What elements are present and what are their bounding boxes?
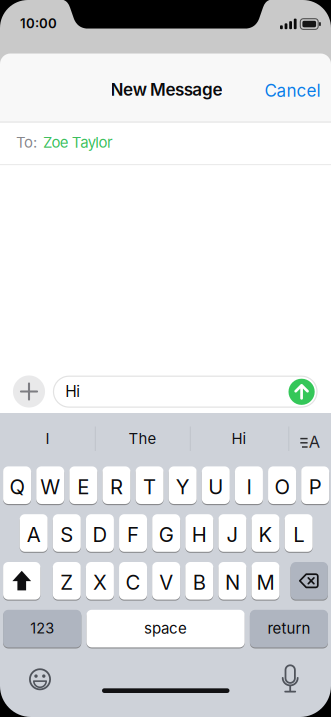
staticText: H <box>192 522 207 547</box>
staticText: A <box>27 522 41 547</box>
staticText: To: <box>16 133 37 151</box>
staticText: T <box>143 474 156 499</box>
staticText: S <box>60 522 73 547</box>
staticText: Zoe Taylor <box>43 133 113 151</box>
staticText: G <box>159 522 174 547</box>
staticText: A <box>309 432 320 452</box>
staticText: C <box>125 570 140 595</box>
staticText: Y <box>176 474 190 499</box>
staticText: K <box>258 522 272 547</box>
staticText: Cancel <box>264 80 320 101</box>
staticText: space <box>144 619 187 637</box>
staticText: Z <box>60 570 73 595</box>
staticText: Hi <box>65 382 80 401</box>
staticText: J <box>226 522 238 547</box>
staticText: L <box>293 522 304 547</box>
staticText: O <box>275 474 290 499</box>
staticText: F <box>127 522 139 547</box>
staticText: B <box>193 570 206 595</box>
staticText: E <box>77 474 89 499</box>
staticText: I <box>246 474 251 499</box>
staticText: New Message <box>110 79 222 100</box>
staticText: U <box>208 474 223 499</box>
staticText: D <box>92 522 107 547</box>
staticText: X <box>93 570 107 595</box>
staticText: N <box>225 570 240 595</box>
staticText: Hi <box>231 429 246 448</box>
staticText: P <box>309 474 322 499</box>
staticText: W <box>40 474 60 499</box>
staticText: Q <box>10 474 25 499</box>
staticText: I <box>45 429 49 448</box>
staticText: 123 <box>30 619 54 637</box>
staticText: V <box>159 570 173 595</box>
staticText: The <box>128 429 156 448</box>
staticText: return <box>267 619 310 637</box>
staticText: R <box>110 474 123 499</box>
staticText: 10:00 <box>20 15 57 31</box>
staticText: M <box>256 570 274 595</box>
